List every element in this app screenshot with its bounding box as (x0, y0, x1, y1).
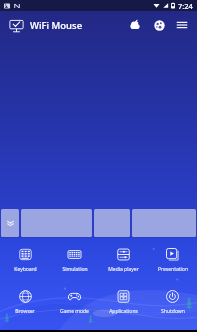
staticText: Game mode (60, 308, 89, 315)
button[interactable]: Presentation (148, 239, 197, 281)
button[interactable]: Game mode (50, 281, 99, 323)
staticText: Shutdown (161, 308, 185, 315)
button[interactable]: Keyboard (0, 239, 50, 281)
button[interactable]: Browser (0, 281, 50, 323)
button[interactable]: Menu (174, 17, 190, 33)
staticText: Keyboard (14, 266, 37, 273)
button[interactable]: Expand (1, 209, 19, 237)
staticText: Simulation (62, 266, 88, 273)
button[interactable]: Media player (99, 239, 148, 281)
staticText: 7:24 (178, 1, 193, 11)
button[interactable]: Applications (99, 281, 148, 323)
button[interactable]: Mac mode (127, 17, 143, 33)
button[interactable]: Connected device (8, 17, 25, 34)
staticText: Media player (108, 266, 139, 273)
staticText: WiFi Mouse (30, 19, 83, 32)
staticText: Applications (109, 308, 138, 315)
button[interactable]: Shutdown (148, 281, 197, 323)
button[interactable]: Simulation (50, 239, 99, 281)
staticText: Presentation (158, 266, 188, 273)
staticText: Browser (15, 308, 35, 315)
button[interactable]: Middle click (94, 209, 130, 237)
button[interactable]: Server (151, 17, 167, 33)
